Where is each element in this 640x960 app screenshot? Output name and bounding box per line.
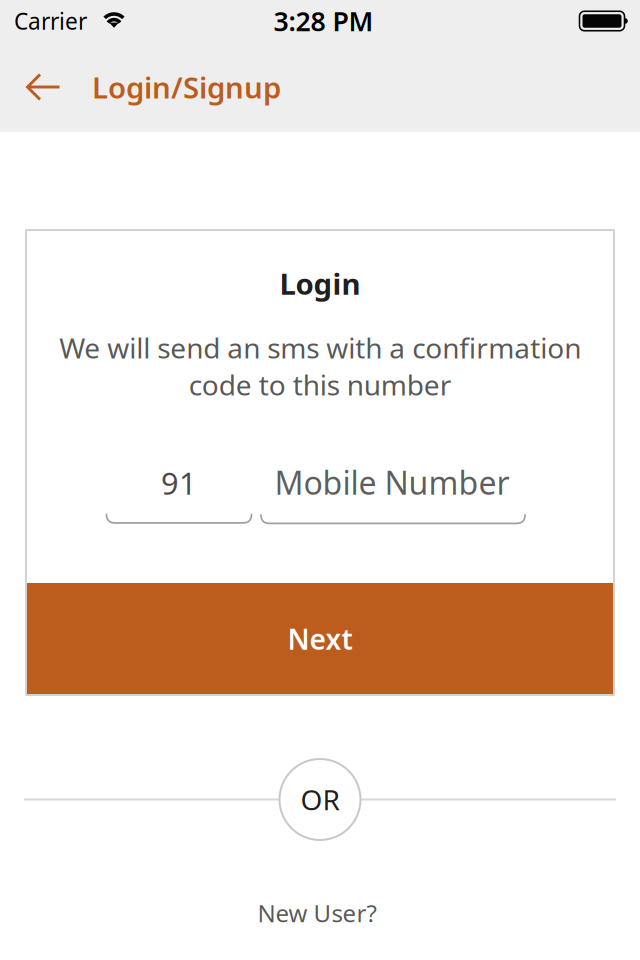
staticText: 91 xyxy=(161,462,197,503)
staticText: We will send an sms with a confirmation … xyxy=(59,329,581,403)
staticText: 3:28 PM xyxy=(273,3,373,39)
button[interactable]: New User? xyxy=(0,895,640,931)
button[interactable]: Next xyxy=(26,583,614,695)
staticText: Carrier xyxy=(14,6,87,36)
staticText: Next xyxy=(287,620,352,658)
button[interactable]: 91 xyxy=(105,468,252,524)
staticText: Login/Signup xyxy=(92,67,281,106)
staticText: New User? xyxy=(257,897,376,929)
staticText: Mobile Number xyxy=(274,461,509,504)
button[interactable]: Mobile Number xyxy=(258,467,527,524)
button[interactable]: Back xyxy=(15,59,72,115)
staticText: OR xyxy=(300,781,339,818)
staticText: Login xyxy=(279,264,360,303)
